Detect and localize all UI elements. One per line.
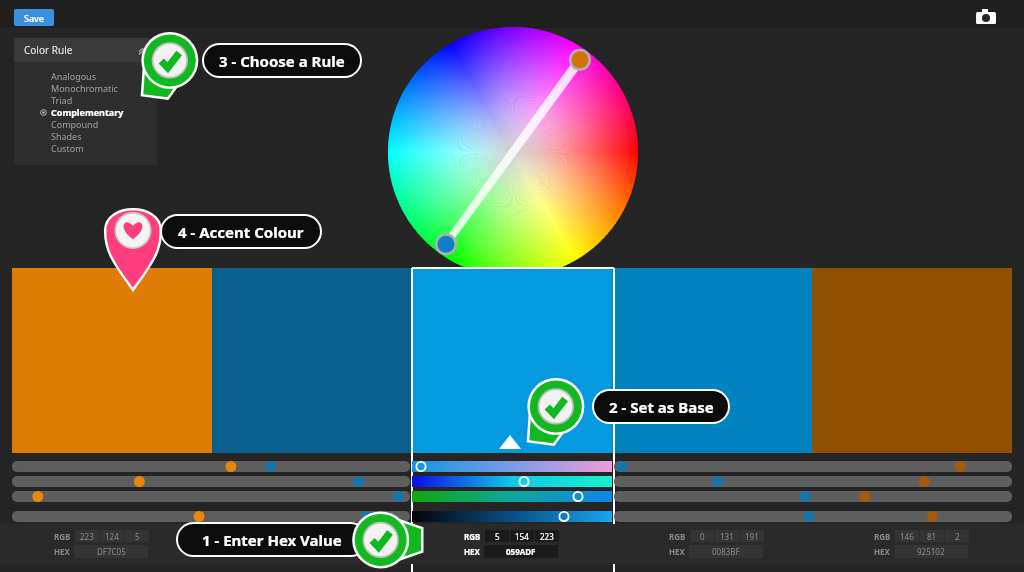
button[interactable]: Step 3 — [132, 26, 218, 112]
button[interactable]: Analogous — [14, 70, 157, 82]
button[interactable]: 1 - Enter Hex Value — [178, 524, 366, 555]
button[interactable]: Accent colour pin — [102, 196, 164, 278]
staticText: 5 — [135, 531, 140, 542]
staticText: 3 - Choose a Rule — [219, 51, 345, 71]
staticText: Custom — [51, 142, 84, 154]
staticText: 0 — [700, 531, 705, 542]
button[interactable]: Complementary — [14, 106, 157, 118]
staticText: Color Rule — [24, 43, 73, 57]
staticText: 81 — [927, 531, 937, 542]
button[interactable] — [12, 511, 410, 522]
button[interactable]: Screenshot — [974, 6, 998, 26]
button[interactable] — [614, 476, 1012, 487]
button[interactable] — [12, 476, 410, 487]
button[interactable]: Step 2 — [518, 372, 604, 458]
staticText: 124 — [105, 531, 119, 542]
button[interactable]: 3 - Choose a Rule — [204, 45, 360, 76]
button[interactable] — [412, 268, 612, 453]
button[interactable]: Custom — [14, 142, 157, 154]
staticText: 131 — [720, 531, 734, 542]
staticText: Triad — [51, 94, 73, 106]
staticText: 925102 — [917, 546, 945, 557]
button[interactable] — [412, 511, 612, 522]
staticText: Complementary — [51, 106, 124, 118]
staticText: 2 — [955, 531, 960, 542]
staticText: Shades — [51, 130, 82, 142]
staticText: Compound — [51, 118, 99, 130]
button[interactable] — [614, 511, 1012, 522]
button[interactable]: RGB — [874, 530, 970, 558]
staticText: HEX — [874, 546, 890, 557]
button[interactable]: RGB — [669, 530, 765, 558]
button[interactable]: Shades — [14, 130, 157, 142]
button[interactable]: RGB — [464, 530, 560, 558]
button[interactable]: Save — [14, 9, 54, 26]
button[interactable] — [612, 268, 812, 453]
button[interactable]: Triad — [14, 94, 157, 106]
button[interactable]: Color wheel — [388, 27, 638, 277]
button[interactable]: Step 1 — [348, 510, 434, 572]
button[interactable] — [412, 491, 612, 502]
button[interactable]: 2 - Set as Base — [594, 391, 728, 422]
staticText: 5 — [495, 531, 500, 542]
staticText: RGB — [669, 531, 686, 542]
staticText: 154 — [515, 531, 529, 542]
staticText: 191 — [745, 531, 759, 542]
button[interactable] — [614, 461, 1012, 472]
staticText: 059ADF — [506, 546, 536, 557]
button[interactable] — [12, 268, 212, 453]
staticText: HEX — [669, 546, 685, 557]
staticText: HEX — [54, 546, 70, 557]
button[interactable] — [12, 461, 410, 472]
staticText: Analogous — [51, 70, 96, 82]
staticText: 0083BF — [712, 546, 740, 557]
staticText: HEX — [464, 546, 480, 557]
button[interactable]: Color Rule — [24, 38, 147, 62]
button[interactable] — [412, 476, 612, 487]
button[interactable] — [412, 461, 612, 472]
staticText: Monochromatic — [51, 82, 118, 94]
staticText: RGB — [54, 531, 71, 542]
staticText: 2 - Set as Base — [609, 397, 714, 417]
button[interactable] — [212, 268, 412, 453]
button[interactable] — [12, 491, 410, 502]
staticText: 223 — [540, 531, 554, 542]
staticText: RGB — [464, 531, 481, 542]
staticText: DF7C05 — [97, 546, 126, 557]
staticText: 223 — [80, 531, 94, 542]
staticText: 1 - Enter Hex Value — [202, 530, 342, 550]
staticText: Save — [24, 12, 45, 24]
button[interactable]: Monochromatic — [14, 82, 157, 94]
button[interactable] — [614, 491, 1012, 502]
button[interactable]: RGB — [54, 530, 150, 558]
staticText: 146 — [900, 531, 914, 542]
staticText: 4 - Accent Colour — [178, 222, 304, 242]
button[interactable]: 4 - Accent Colour — [162, 216, 320, 247]
button[interactable]: Compound — [14, 118, 157, 130]
staticText: RGB — [874, 531, 891, 542]
